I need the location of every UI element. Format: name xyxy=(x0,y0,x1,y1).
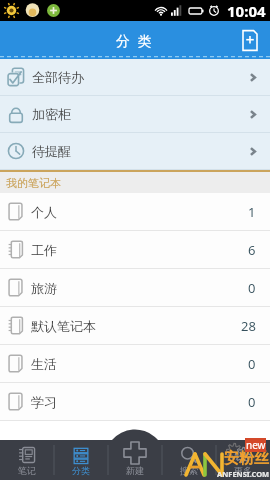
staticText: 0 xyxy=(248,279,256,297)
button[interactable]: 生活 xyxy=(0,345,270,382)
staticText: 10:04 xyxy=(227,1,266,21)
staticText: 28 xyxy=(241,317,256,335)
staticText: 搜索 xyxy=(180,465,198,476)
staticText: 学习 xyxy=(31,394,57,410)
staticText: 6 xyxy=(248,241,256,259)
staticText: 生活 xyxy=(31,356,57,372)
staticText: 工作 xyxy=(31,242,57,258)
button[interactable]: 搜索 xyxy=(162,430,216,480)
button[interactable]: 新建 xyxy=(108,430,162,480)
staticText: 0 xyxy=(248,355,256,373)
staticText: 旅游 xyxy=(31,280,57,296)
staticText: new xyxy=(246,438,266,452)
staticText: ANFENSI.COM xyxy=(217,469,270,479)
button[interactable]: 加密柜 xyxy=(0,96,270,132)
staticText: 更多 xyxy=(234,465,252,476)
button[interactable]: 分类 xyxy=(54,430,108,480)
staticText: 0 xyxy=(248,393,256,411)
button[interactable]: 个人 xyxy=(0,193,270,230)
staticText: 个人 xyxy=(31,204,57,220)
button[interactable]: 待提醒 xyxy=(0,133,270,169)
button[interactable]: 笔记 xyxy=(0,430,54,480)
staticText: 全部待办 xyxy=(32,69,84,85)
staticText: 分类 xyxy=(72,465,90,476)
button[interactable]: 工作 xyxy=(0,231,270,268)
button[interactable]: New notebook xyxy=(235,25,265,55)
button[interactable]: 旅游 xyxy=(0,269,270,306)
staticText: 笔记 xyxy=(18,465,36,476)
button[interactable]: 全部待办 xyxy=(0,59,270,95)
staticText: 待提醒 xyxy=(32,143,71,159)
staticText: 新建 xyxy=(126,465,144,476)
staticText: 我的笔记本 xyxy=(6,176,61,190)
button[interactable]: 默认笔记本 xyxy=(0,307,270,344)
staticText: 1 xyxy=(248,203,256,221)
staticText: 分 类 xyxy=(116,31,154,50)
staticText: 默认笔记本 xyxy=(31,318,96,334)
staticText: 加密柜 xyxy=(32,106,71,122)
button[interactable]: 更多 xyxy=(216,430,270,480)
button[interactable]: 学习 xyxy=(0,383,270,420)
staticText: 安粉丝 xyxy=(224,449,269,468)
